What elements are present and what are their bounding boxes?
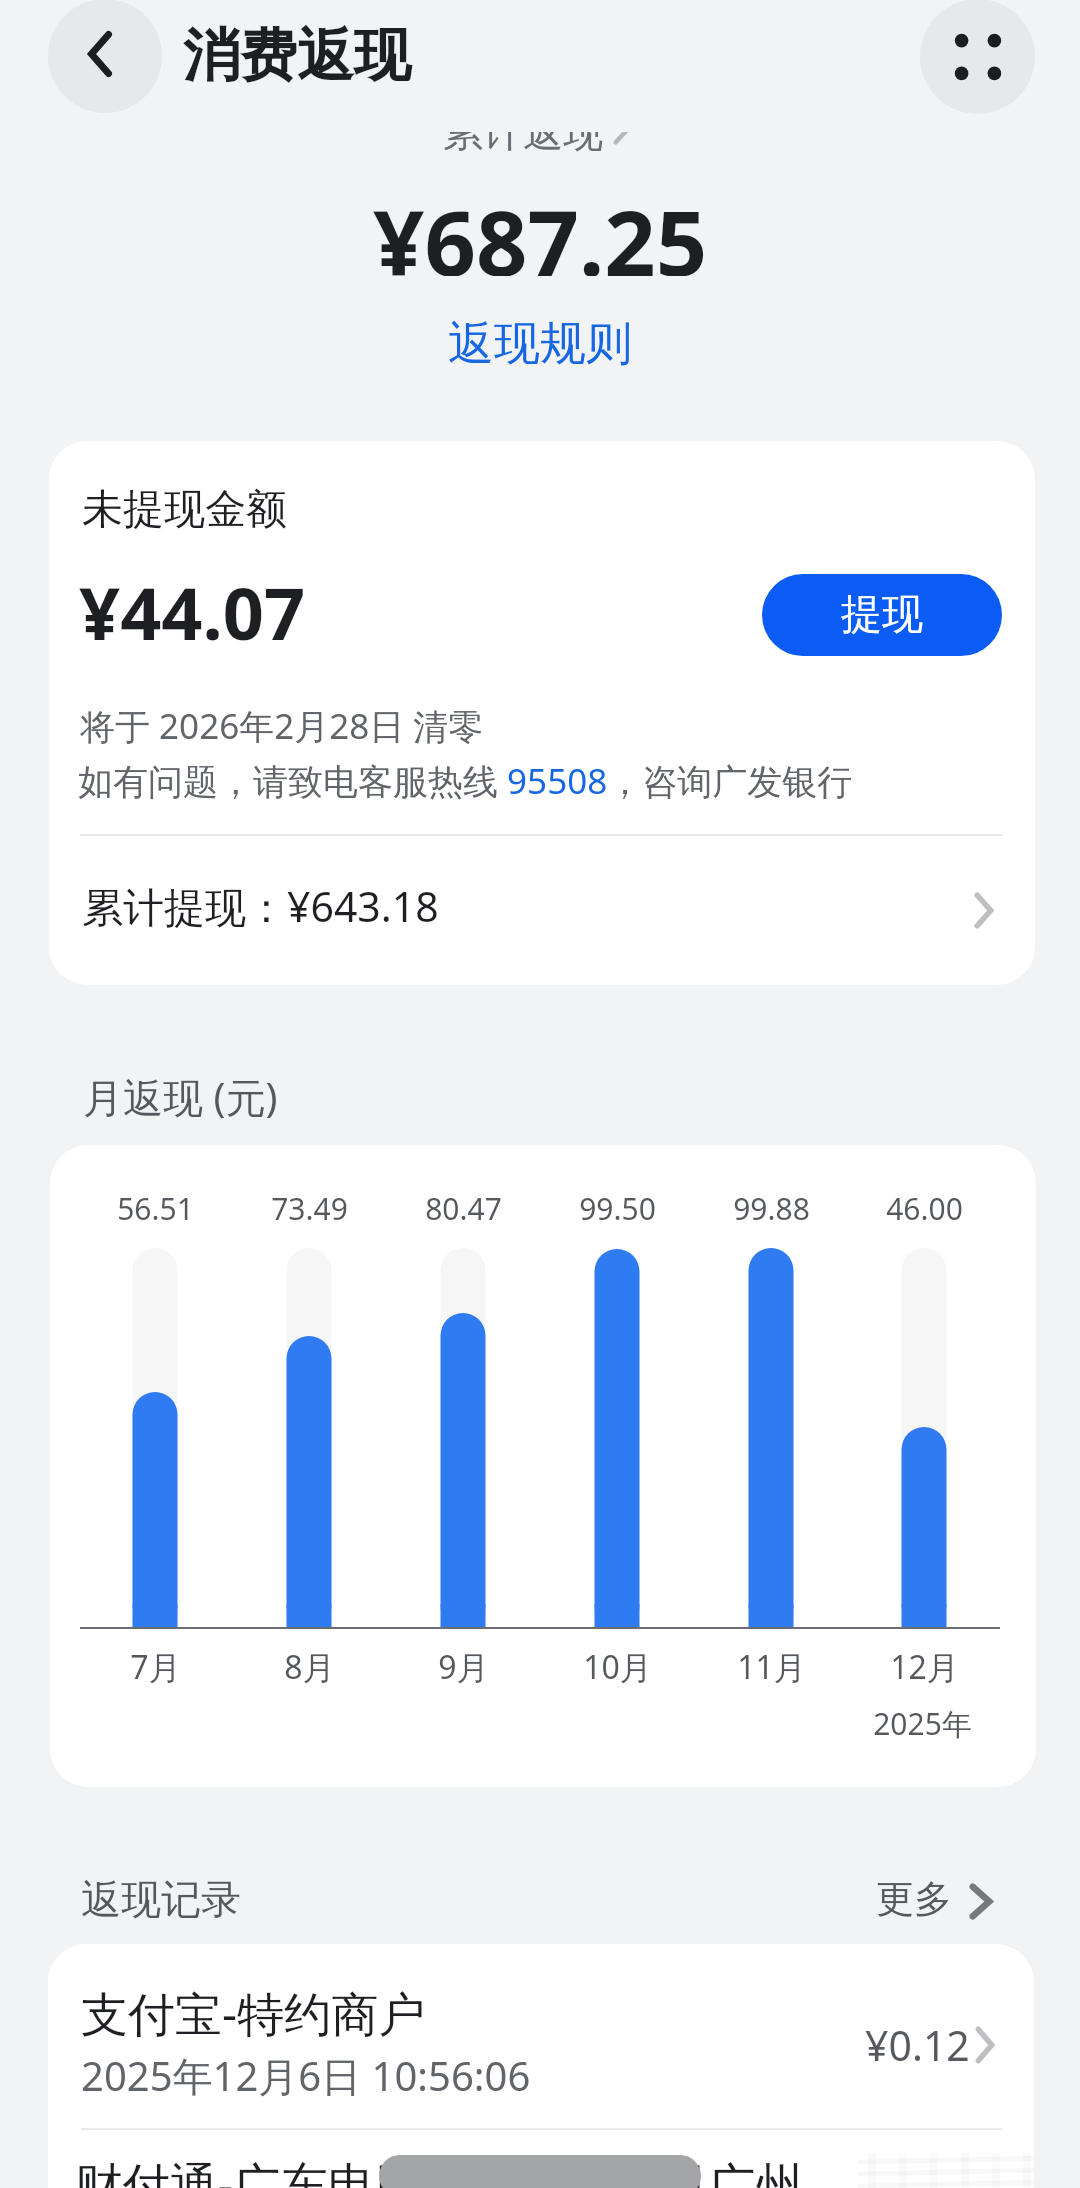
staticText: 消费返现	[183, 20, 411, 92]
staticText: 99.50	[579, 1188, 656, 1229]
staticText: 更多	[876, 1875, 952, 1923]
staticText: 提现	[841, 589, 923, 641]
staticText: 46.00	[886, 1188, 963, 1229]
staticText: 未提现金额	[82, 484, 287, 536]
staticText: 累计返现	[443, 107, 603, 157]
staticText: 12月	[890, 1645, 959, 1689]
staticText: ¥687.25	[373, 180, 708, 276]
staticText: 2025年	[873, 1703, 972, 1744]
staticText: 如有问题，请致电客服热线 95508，咨询广发银行	[78, 757, 853, 805]
staticText: ¥0.12	[865, 2017, 970, 2073]
staticText: 8月	[284, 1645, 335, 1689]
button[interactable]: 返现规则	[442, 311, 638, 375]
button[interactable]: 累计提现：¥643.18	[49, 831, 1035, 981]
staticText: 支付宝-特约商户	[81, 1981, 426, 2045]
button[interactable]: More options	[920, 0, 1035, 114]
staticText: 80.47	[425, 1188, 502, 1229]
staticText: 财付通-广东电网有限责任公司广州	[75, 2151, 803, 2188]
staticText: ¥44.07	[79, 563, 306, 661]
staticText: 返现记录	[81, 1874, 241, 1924]
button[interactable]: 提现	[762, 574, 1002, 656]
button[interactable]: Back	[48, 0, 162, 113]
staticText: 10月	[583, 1645, 652, 1689]
button[interactable]: 更多	[876, 1875, 996, 1923]
staticText: 7月	[130, 1645, 181, 1689]
staticText: 累计提现：¥643.18	[82, 878, 439, 934]
staticText: 11月	[737, 1645, 806, 1689]
button[interactable]: 支付宝-特约商户	[48, 1944, 1034, 2114]
staticText: 56.51	[117, 1188, 194, 1229]
staticText: 月返现 (元)	[83, 1069, 278, 1124]
staticText: 2025年12月6日 10:56:06	[81, 2048, 531, 2103]
button[interactable]: 累计返现	[443, 107, 628, 157]
staticText: 73.49	[271, 1188, 348, 1229]
staticText: 返现规则	[448, 315, 632, 371]
staticText: 将于 2026年2月28日 清零	[80, 702, 484, 750]
staticText: 9月	[438, 1645, 489, 1689]
staticText: 99.88	[733, 1188, 810, 1229]
